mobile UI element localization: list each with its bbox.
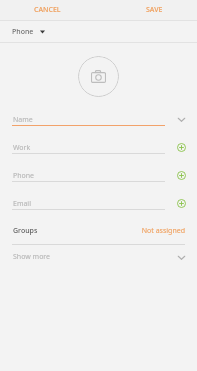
- button[interactable]: Phone: [0, 21, 197, 42]
- staticText: CANCEL: [34, 5, 61, 15]
- staticText: Work: [13, 143, 31, 153]
- staticText: Name: [13, 115, 33, 125]
- staticText: SAVE: [146, 5, 163, 15]
- staticText: Phone: [12, 27, 34, 37]
- button[interactable]: Name: [0, 108, 197, 136]
- staticText: Show more: [13, 252, 51, 262]
- button[interactable]: Add photo: [78, 56, 119, 97]
- button[interactable]: Add Email: [173, 195, 189, 211]
- button[interactable]: Phone: [0, 164, 197, 192]
- button[interactable]: Work: [0, 136, 197, 164]
- button[interactable]: Show more: [0, 245, 197, 269]
- staticText: Groups: [13, 226, 38, 236]
- button[interactable]: Groups: [0, 220, 197, 245]
- button[interactable]: CANCEL: [30, 3, 65, 17]
- staticText: Phone: [13, 171, 35, 181]
- staticText: Not assigned: [141, 226, 185, 236]
- button[interactable]: Expand: [173, 111, 189, 127]
- button[interactable]: Email: [0, 192, 197, 220]
- button[interactable]: Add Phone: [173, 167, 189, 183]
- staticText: Email: [13, 199, 31, 209]
- button[interactable]: Show more fields: [173, 249, 189, 265]
- button[interactable]: Add Work: [173, 139, 189, 155]
- button[interactable]: SAVE: [142, 3, 167, 17]
